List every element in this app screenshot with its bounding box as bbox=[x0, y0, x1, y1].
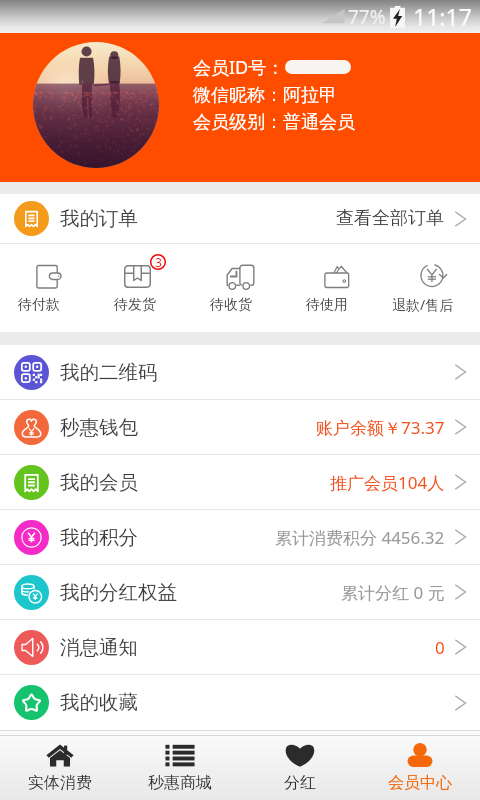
staticText: 会员级别：普通会员 bbox=[193, 111, 355, 134]
button[interactable]: 秒惠商城 bbox=[120, 736, 240, 800]
staticText: 推广会员104人 bbox=[330, 471, 445, 494]
staticText: 待收货 bbox=[210, 296, 252, 314]
button[interactable]: 实体消费 bbox=[0, 736, 120, 800]
staticText: 待使用 bbox=[306, 296, 348, 314]
button[interactable]: 我的收藏 bbox=[0, 675, 480, 730]
staticText: 我的收藏 bbox=[60, 690, 138, 715]
staticText: 秒惠钱包 bbox=[60, 415, 138, 440]
staticText: 账户余额￥73.37 bbox=[316, 416, 445, 439]
staticText: 消息通知 bbox=[60, 635, 138, 660]
button[interactable]: 我的二维码 bbox=[0, 345, 480, 399]
staticText: 我的会员 bbox=[60, 470, 138, 495]
staticText: 0 bbox=[435, 636, 445, 659]
staticText: 我的分红权益 bbox=[60, 580, 177, 605]
button[interactable]: 待付款 bbox=[0, 244, 96, 332]
button[interactable]: 我的分红权益 bbox=[0, 565, 480, 619]
button[interactable]: 待使用 bbox=[288, 244, 384, 332]
staticText: 77% bbox=[348, 4, 386, 30]
staticText: 秒惠商城 bbox=[148, 773, 212, 793]
button[interactable]: 待收货 bbox=[192, 244, 288, 332]
staticText: 我的积分 bbox=[60, 525, 138, 550]
staticText: 我的二维码 bbox=[60, 360, 158, 385]
staticText: 会员中心 bbox=[388, 773, 452, 793]
button[interactable]: 秒惠钱包 bbox=[0, 400, 480, 454]
staticText: 11:17 bbox=[413, 1, 472, 32]
staticText: 微信昵称：阿拉甲 bbox=[193, 84, 337, 107]
button[interactable]: 我的会员 bbox=[0, 455, 480, 509]
button[interactable]: 消息通知 bbox=[0, 620, 480, 674]
staticText: 我的订单 bbox=[60, 206, 138, 231]
button[interactable]: 会员中心 bbox=[360, 736, 480, 800]
staticText: 累计消费积分 4456.32 bbox=[275, 526, 445, 549]
staticText: 查看全部订单 bbox=[336, 207, 444, 230]
staticText: 累计分红 0 元 bbox=[341, 581, 445, 604]
button[interactable]: 分红 bbox=[240, 736, 360, 800]
button[interactable]: 3 bbox=[96, 244, 192, 332]
staticText: 3 bbox=[155, 254, 162, 270]
staticText: 待付款 bbox=[18, 296, 60, 314]
button[interactable]: 退款/售后 bbox=[384, 244, 480, 332]
staticText: 实体消费 bbox=[28, 773, 92, 793]
staticText: 退款/售后 bbox=[392, 295, 454, 314]
button[interactable]: 我的订单 bbox=[0, 194, 480, 243]
staticText: 会员ID号： bbox=[193, 55, 285, 80]
staticText: 待发货 bbox=[114, 296, 156, 314]
staticText: 分红 bbox=[284, 773, 316, 793]
button[interactable]: 我的积分 bbox=[0, 510, 480, 564]
